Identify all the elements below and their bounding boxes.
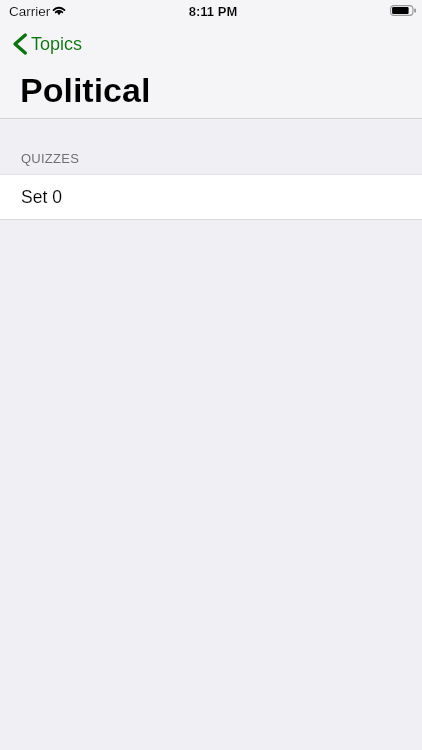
staticText: 8:11 PM — [2, 4, 422, 19]
staticText: Political — [20, 71, 151, 109]
staticText: Set 0 — [21, 187, 62, 207]
button[interactable]: Set 0 — [0, 175, 422, 219]
staticText: Carrier — [9, 4, 51, 19]
other: Battery — [390, 5, 418, 17]
button[interactable]: Back to Topics — [9, 31, 89, 57]
staticText: QUIZZES — [21, 151, 80, 166]
staticText: Topics — [31, 34, 83, 54]
